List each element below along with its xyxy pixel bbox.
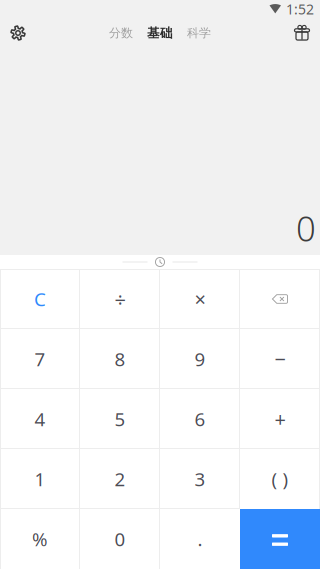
button[interactable] <box>240 269 320 329</box>
button[interactable]: 9 <box>160 329 240 389</box>
button[interactable]: × <box>160 269 240 329</box>
button[interactable]: 1 <box>0 449 80 509</box>
button[interactable]: 基础 <box>147 25 173 41</box>
staticText: C <box>34 286 46 312</box>
button[interactable]: 分数 <box>109 25 133 40</box>
staticText: 5 <box>114 406 125 432</box>
staticText: × <box>194 285 205 313</box>
staticText: 3 <box>194 466 205 492</box>
button[interactable]: . <box>160 509 240 569</box>
staticText: ÷ <box>114 285 125 313</box>
staticText: % <box>32 526 48 552</box>
staticText: 7 <box>34 346 45 372</box>
staticText: ( ) <box>271 466 288 492</box>
button[interactable]: 6 <box>160 389 240 449</box>
button[interactable]: C <box>0 269 80 329</box>
button[interactable]: History <box>155 257 164 266</box>
staticText: 基础 <box>147 25 173 41</box>
button[interactable]: − <box>240 329 320 389</box>
staticText: 0 <box>296 205 316 251</box>
staticText: 1:52 <box>286 0 314 19</box>
button[interactable]: ÷ <box>80 269 160 329</box>
staticText: 0 <box>114 526 125 552</box>
button[interactable] <box>240 509 320 569</box>
button[interactable]: Settings <box>0 18 36 48</box>
staticText: 1 <box>34 466 45 492</box>
button[interactable]: 2 <box>80 449 160 509</box>
button[interactable]: 0 <box>80 509 160 569</box>
button[interactable]: 3 <box>160 449 240 509</box>
button[interactable]: 4 <box>0 389 80 449</box>
button[interactable]: Gifts <box>284 18 320 48</box>
staticText: + <box>274 405 285 433</box>
button[interactable]: 8 <box>80 329 160 389</box>
staticText: 科学 <box>187 25 211 40</box>
staticText: 6 <box>194 406 205 432</box>
button[interactable]: 5 <box>80 389 160 449</box>
button[interactable]: ( ) <box>240 449 320 509</box>
staticText: 8 <box>114 346 125 372</box>
staticText: . <box>197 526 202 552</box>
staticText: 4 <box>34 406 45 432</box>
button[interactable]: 科学 <box>187 25 211 40</box>
button[interactable]: % <box>0 509 80 569</box>
staticText: 分数 <box>109 25 133 40</box>
button[interactable]: 7 <box>0 329 80 389</box>
button[interactable]: + <box>240 389 320 449</box>
staticText: − <box>274 345 285 373</box>
staticText: 2 <box>114 466 125 492</box>
staticText: 9 <box>194 346 205 372</box>
